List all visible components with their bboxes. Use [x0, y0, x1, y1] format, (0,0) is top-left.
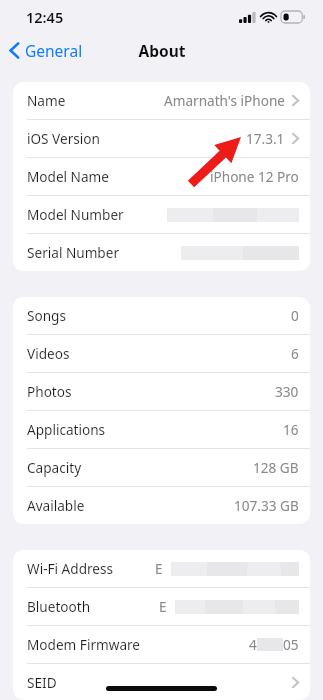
- staticText: 107.33 GB: [234, 496, 299, 515]
- staticText: 17.3.1: [246, 129, 285, 148]
- staticText: Amarnath's iPhone: [164, 91, 285, 110]
- staticText: E: [159, 597, 167, 616]
- staticText: iPhone 12 Pro: [210, 167, 299, 186]
- staticText: iOS Version: [27, 129, 100, 148]
- staticText: Available: [27, 496, 85, 515]
- staticText: Name: [27, 91, 66, 110]
- button[interactable]: Name: [13, 82, 310, 119]
- staticText: SEID: [27, 673, 57, 692]
- button[interactable]: Applications: [13, 411, 310, 448]
- button[interactable]: General: [0, 36, 91, 65]
- button[interactable]: iOS Version: [13, 120, 310, 157]
- button[interactable]: Modem Firmware: [13, 626, 310, 663]
- button[interactable]: Model Number: [13, 196, 310, 233]
- button[interactable]: Videos: [13, 335, 310, 372]
- staticText: Serial Number: [27, 243, 120, 262]
- other: Annotation arrow: [0, 0, 323, 700]
- button[interactable]: Available: [13, 487, 310, 524]
- staticText: 330: [275, 382, 299, 401]
- staticText: Capacity: [27, 458, 82, 477]
- staticText: Model Name: [27, 167, 109, 186]
- staticText: 6: [291, 344, 299, 363]
- staticText: 0: [291, 306, 299, 325]
- staticText: E: [155, 559, 163, 578]
- staticText: Applications: [27, 420, 106, 439]
- staticText: Videos: [27, 344, 70, 363]
- button[interactable]: Bluetooth: [13, 588, 310, 625]
- button[interactable]: Model Name: [13, 158, 310, 195]
- staticText: Modem Firmware: [27, 635, 141, 654]
- button[interactable]: Photos: [13, 373, 310, 410]
- button[interactable]: Capacity: [13, 449, 310, 486]
- button[interactable]: Serial Number: [13, 234, 310, 271]
- staticText: 16: [283, 420, 299, 439]
- staticText: Model Number: [27, 205, 124, 224]
- button[interactable]: Wi-Fi Address: [13, 550, 310, 587]
- staticText: 4: [249, 635, 257, 654]
- staticText: Photos: [27, 382, 72, 401]
- staticText: About: [138, 40, 186, 61]
- button[interactable]: SEID: [13, 664, 310, 700]
- staticText: 05: [283, 635, 299, 654]
- staticText: Songs: [27, 306, 66, 325]
- button[interactable]: Songs: [13, 297, 310, 334]
- staticText: General: [25, 40, 83, 61]
- staticText: Wi-Fi Address: [27, 559, 114, 578]
- staticText: 12:45: [26, 7, 64, 27]
- staticText: Bluetooth: [27, 597, 91, 616]
- staticText: 128 GB: [253, 458, 299, 477]
